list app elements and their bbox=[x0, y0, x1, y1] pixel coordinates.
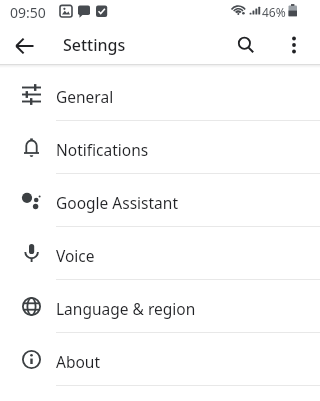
staticText: 09:50 bbox=[10, 3, 46, 22]
staticText: Notifications bbox=[56, 139, 149, 160]
staticText: 46% bbox=[262, 4, 286, 20]
button[interactable] bbox=[280, 30, 310, 60]
button[interactable] bbox=[231, 30, 261, 60]
button[interactable]: Notifications bbox=[0, 121, 320, 174]
button[interactable]: Voice bbox=[0, 227, 320, 280]
button[interactable]: Language & region bbox=[0, 280, 320, 333]
button[interactable]: Google Assistant bbox=[0, 174, 320, 227]
staticText: Settings bbox=[63, 34, 126, 56]
button[interactable]: About bbox=[0, 333, 320, 386]
staticText: General bbox=[56, 86, 114, 107]
button[interactable] bbox=[8, 29, 42, 63]
staticText: Language & region bbox=[56, 298, 196, 319]
staticText: Voice bbox=[56, 245, 95, 266]
staticText: Google Assistant bbox=[56, 192, 178, 213]
button[interactable]: General bbox=[0, 68, 320, 121]
staticText: About bbox=[56, 351, 100, 372]
